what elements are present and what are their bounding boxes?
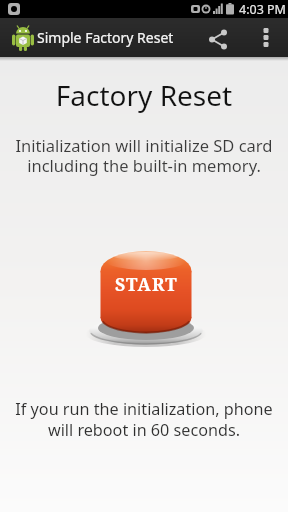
staticText: If you run the initialization, phone wil… [0, 398, 288, 440]
staticText: Initialization will initialize SD card i… [0, 134, 288, 177]
button[interactable] [202, 18, 234, 57]
button[interactable] [252, 18, 280, 57]
staticText: Factory Reset [0, 76, 288, 114]
staticText: 4:03 PM [239, 1, 286, 18]
button[interactable] [10, 25, 36, 53]
button[interactable]: START [89, 251, 203, 345]
staticText: START [115, 272, 178, 296]
staticText: Simple Factory Reset [37, 28, 174, 47]
